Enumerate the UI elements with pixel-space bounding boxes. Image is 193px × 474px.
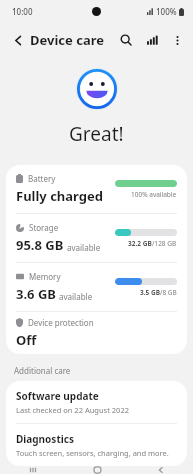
staticText: available [67,242,101,253]
staticText: Additional care [14,365,71,376]
button[interactable]: Storage [6,214,187,262]
staticText: Device protection [28,317,94,328]
button[interactable]: More options [165,28,189,52]
button[interactable]: Memory [6,263,187,311]
button[interactable]: Battery [6,165,187,213]
staticText: 3.6 GB [16,285,56,303]
staticText: available [59,291,93,302]
staticText: 32.2 GB [128,239,152,248]
button[interactable]: Back [129,466,193,474]
button[interactable]: Software update [6,381,187,423]
staticText: 95.8 GB [16,236,64,254]
staticText: 100% [156,6,177,17]
button[interactable]: Back [4,26,32,54]
staticText: Battery [28,173,56,184]
staticText: Last checked on 22 August 2022 [16,405,129,415]
staticText: /128 GB [152,239,177,248]
staticText: Fully charged [16,187,103,205]
staticText: 100% available [131,190,177,199]
button[interactable]: Recents [0,466,65,474]
button[interactable]: Search [113,27,139,53]
staticText: Off [16,331,37,349]
button[interactable]: Device protection [6,312,187,354]
staticText: 10:00 [12,6,33,17]
staticText: Software update [16,389,99,403]
staticText: Diagnostics [16,432,74,446]
staticText: /8 GB [160,288,177,297]
staticText: Storage [29,222,59,233]
button[interactable]: Home [65,466,129,474]
staticText: Touch screen, sensors, charging, and mor… [16,448,169,458]
staticText: 3.5 GB [140,288,160,297]
staticText: Memory [29,271,61,282]
staticText: Great! [69,121,124,147]
staticText: Device care [30,31,104,49]
button[interactable]: Diagnostics [6,424,187,466]
button[interactable]: Usage statistics [139,27,165,53]
